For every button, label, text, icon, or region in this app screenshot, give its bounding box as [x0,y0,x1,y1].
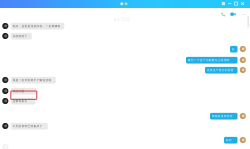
staticText: 我稍后再发给你 [212,115,233,118]
staticText: 今天的资料已准备好了 [13,125,43,128]
button[interactable]: Video call [230,12,236,16]
staticText: 还要等多久 [13,100,28,103]
staticText: 在 [232,48,235,51]
staticText: 好的收到了 [13,35,28,38]
button[interactable]: 还要等多久 [2,98,35,104]
button[interactable]: 还有这个地方的设置 [205,67,246,73]
staticText: 好的 [226,139,232,142]
button[interactable]: 我是一名开发者不了解这些啦 [2,77,56,83]
button[interactable]: More [240,12,246,16]
staticText: 你好，这里是消息内容，一会再聊啦 [13,25,61,28]
button[interactable]: 我的问题 [2,88,36,94]
button[interactable]: 我稍后再发给你 [210,113,246,119]
staticText: 请问一下这个功能要怎么样用呢 [188,59,230,62]
staticText: 我是一名开发者不了解这些啦 [13,79,52,82]
button[interactable]: 请问一下这个功能要怎么样用呢 [186,57,246,63]
button[interactable]: 你好，这里是消息内容，一会再聊啦 [2,23,64,29]
button[interactable]: 好的 [224,137,246,143]
staticText: 还有这个地方的设置 [207,69,234,72]
staticText: 昨天 15:22 [114,18,130,21]
staticText: 我的问题 [13,90,25,93]
button[interactable]: 今天的资料已准备好了 [2,123,48,129]
button[interactable]: Voice call [221,12,226,17]
button[interactable]: 好的收到了 [2,33,32,39]
button[interactable]: 在 [230,46,246,52]
